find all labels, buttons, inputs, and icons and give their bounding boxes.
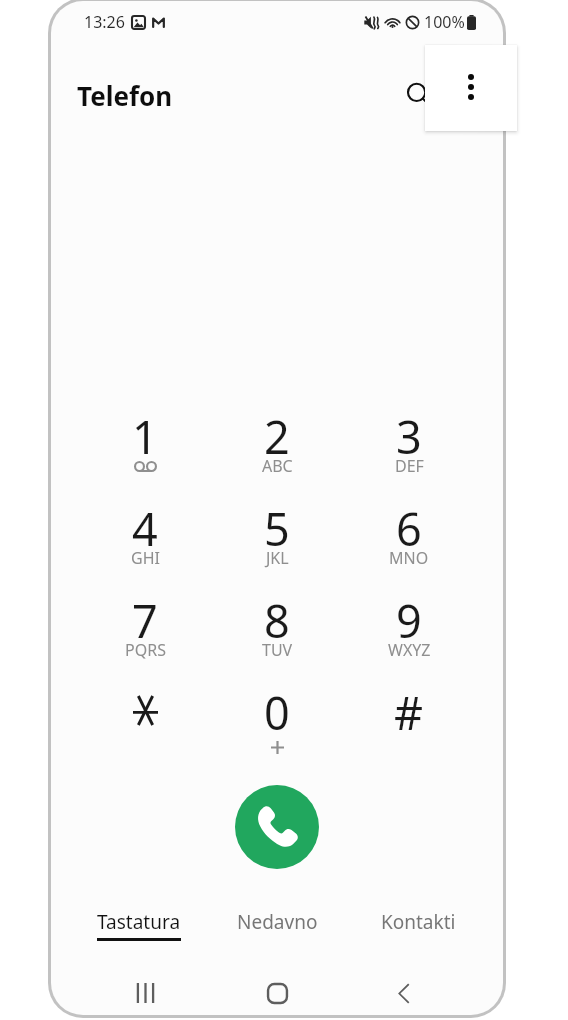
- staticText: 7: [132, 590, 158, 651]
- button[interactable]: Kontakti: [367, 905, 470, 939]
- button[interactable]: 0: [211, 682, 343, 774]
- staticText: GHI: [131, 547, 160, 569]
- button[interactable]: #: [343, 682, 475, 774]
- staticText: MNO: [389, 547, 429, 569]
- button[interactable]: 4: [79, 498, 211, 590]
- staticText: 2: [264, 406, 290, 467]
- staticText: TUV: [262, 639, 293, 661]
- button[interactable]: 2: [211, 406, 343, 498]
- staticText: 0: [264, 682, 290, 743]
- button[interactable]: 1: [79, 406, 211, 498]
- staticText: 3: [396, 406, 422, 467]
- button[interactable]: Tastatura: [83, 905, 195, 945]
- button[interactable]: Recents: [121, 970, 169, 1015]
- button[interactable]: 8: [211, 590, 343, 682]
- staticText: ABC: [262, 455, 293, 477]
- button[interactable]: Search: [399, 75, 439, 115]
- button[interactable]: 7: [79, 590, 211, 682]
- staticText: #: [394, 682, 424, 743]
- staticText: 9: [396, 590, 422, 651]
- staticText: 6: [396, 498, 422, 559]
- button[interactable]: Back: [379, 970, 427, 1015]
- staticText: PQRS: [125, 639, 166, 661]
- staticText: 100%: [424, 11, 465, 33]
- staticText: JKL: [266, 547, 289, 569]
- button[interactable]: 9: [343, 590, 475, 682]
- staticText: 1: [132, 406, 158, 467]
- button[interactable]: Nedavno: [223, 905, 332, 939]
- button[interactable]: 3: [343, 406, 475, 498]
- staticText: Telefon: [77, 78, 173, 113]
- staticText: Kontakti: [381, 909, 456, 935]
- button[interactable]: Home: [253, 970, 301, 1015]
- button[interactable]: [79, 682, 211, 774]
- staticText: 8: [264, 590, 290, 651]
- staticText: DEF: [395, 455, 424, 477]
- button[interactable]: Call: [235, 785, 319, 869]
- staticText: Tastatura: [97, 909, 181, 935]
- staticText: Nedavno: [237, 909, 318, 935]
- staticText: 13:26: [84, 11, 125, 33]
- button[interactable]: More options: [425, 45, 517, 131]
- staticText: 4: [132, 498, 158, 559]
- staticText: 5: [264, 498, 290, 559]
- button[interactable]: 5: [211, 498, 343, 590]
- button[interactable]: 6: [343, 498, 475, 590]
- staticText: WXYZ: [388, 639, 431, 661]
